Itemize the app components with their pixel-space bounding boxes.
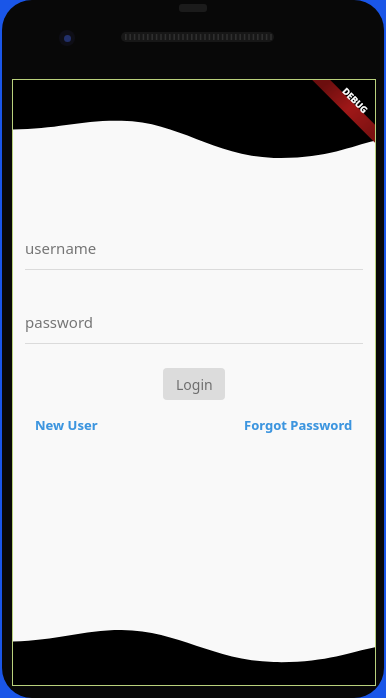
staticText: Forgot Password (244, 416, 353, 434)
button[interactable]: username (25, 227, 363, 270)
staticText: password (25, 312, 93, 332)
button[interactable]: Forgot Password (242, 414, 355, 436)
other: Debug banner (311, 80, 375, 144)
button[interactable]: password (25, 301, 363, 344)
staticText: username (25, 238, 97, 258)
button[interactable]: Login (163, 368, 225, 400)
staticText: New User (35, 416, 98, 434)
staticText: DEBUG (340, 85, 371, 115)
staticText: Login (176, 375, 213, 394)
button[interactable]: New User (33, 414, 100, 436)
